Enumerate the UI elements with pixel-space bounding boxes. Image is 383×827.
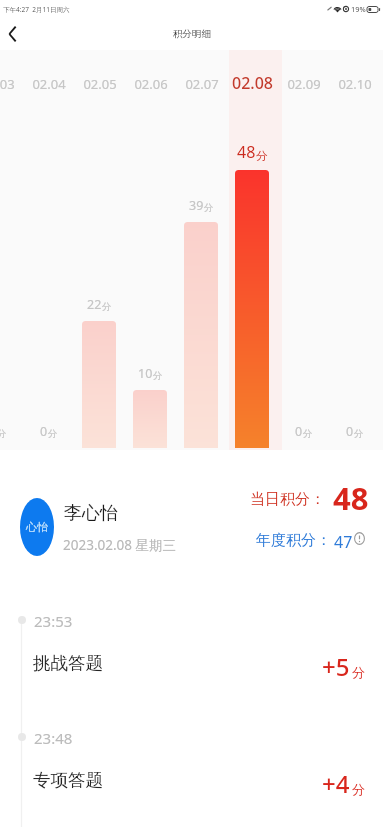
staticText: 02.09 bbox=[287, 75, 321, 93]
staticText: 分 bbox=[204, 202, 214, 214]
button[interactable] bbox=[229, 50, 282, 450]
staticText: 19% bbox=[351, 4, 366, 14]
button[interactable]: Back bbox=[0, 18, 28, 50]
button[interactable]: Avatar bbox=[20, 498, 54, 556]
staticText: 02.06 bbox=[134, 75, 168, 93]
button[interactable]: Info bbox=[352, 531, 366, 545]
staticText: 分 bbox=[0, 428, 7, 440]
staticText: 李心怡 bbox=[64, 502, 118, 525]
staticText: 02.10 bbox=[338, 75, 372, 93]
staticText: +5 bbox=[322, 650, 350, 683]
staticText: 积分明细 bbox=[173, 28, 211, 40]
staticText: 02.05 bbox=[83, 75, 117, 93]
staticText: 39 bbox=[189, 197, 204, 214]
staticText: 48 bbox=[237, 141, 256, 163]
staticText: 当日积分： bbox=[250, 490, 325, 509]
staticText: 2023.02.08 星期三 bbox=[63, 536, 177, 554]
staticText: 分 bbox=[352, 664, 365, 680]
staticText: 心怡 bbox=[26, 520, 48, 534]
staticText: 02.03 bbox=[0, 75, 15, 93]
staticText: 02.08 bbox=[232, 72, 273, 94]
staticText: 23:48 bbox=[34, 728, 73, 748]
staticText: 分 bbox=[354, 428, 364, 440]
staticText: 分 bbox=[352, 781, 365, 797]
staticText: 专项答题 bbox=[33, 769, 103, 791]
staticText: 0 bbox=[346, 423, 354, 440]
staticText: 02.04 bbox=[32, 75, 66, 93]
button[interactable]: 23:53 bbox=[0, 596, 383, 706]
staticText: 分 bbox=[48, 428, 58, 440]
staticText: 22 bbox=[87, 296, 102, 313]
staticText: 下午4:27 2月11日周六 bbox=[3, 5, 70, 14]
staticText: 分 bbox=[153, 370, 163, 382]
staticText: 02.07 bbox=[185, 75, 219, 93]
staticText: 挑战答题 bbox=[33, 652, 103, 674]
staticText: +4 bbox=[322, 767, 350, 800]
staticText: 分 bbox=[303, 428, 313, 440]
button[interactable]: 23:48 bbox=[0, 713, 383, 823]
staticText: 分 bbox=[102, 301, 112, 313]
staticText: 年度积分： bbox=[256, 531, 331, 550]
staticText: 48 bbox=[333, 477, 369, 519]
staticText: 47 bbox=[334, 531, 353, 553]
staticText: 分 bbox=[256, 149, 268, 163]
staticText: 10 bbox=[138, 365, 153, 382]
staticText: 0 bbox=[295, 423, 303, 440]
staticText: 0 bbox=[40, 423, 48, 440]
staticText: 23:53 bbox=[34, 611, 73, 631]
